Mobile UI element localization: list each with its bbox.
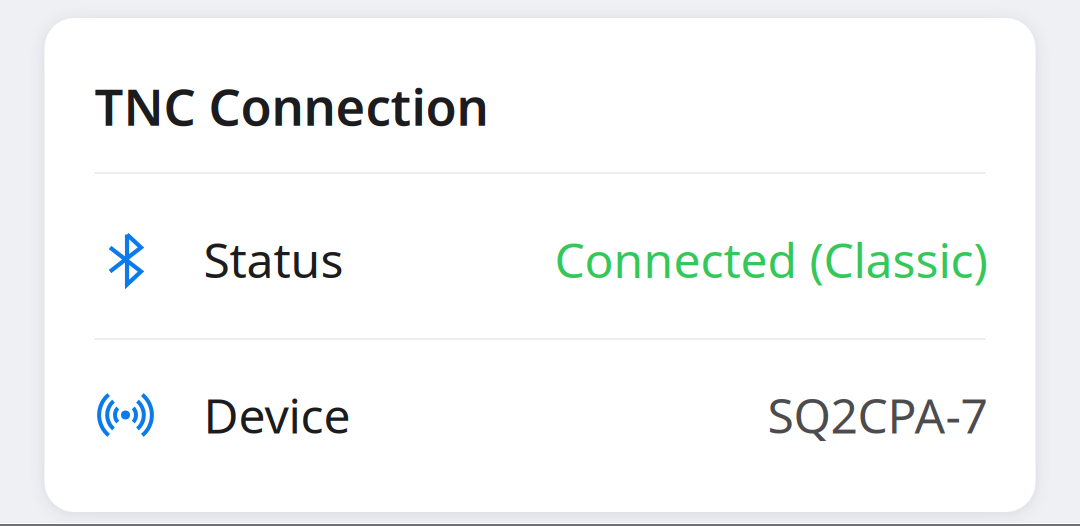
staticText: TNC Connection [94,72,488,140]
staticText: Device [203,383,350,447]
button[interactable]: Status [44,174,1035,338]
button[interactable]: Device [44,340,1035,504]
staticText: SQ2CPA-7 [767,383,987,447]
staticText: Connected (Classic) [554,228,987,291]
staticText: Status [203,228,343,291]
